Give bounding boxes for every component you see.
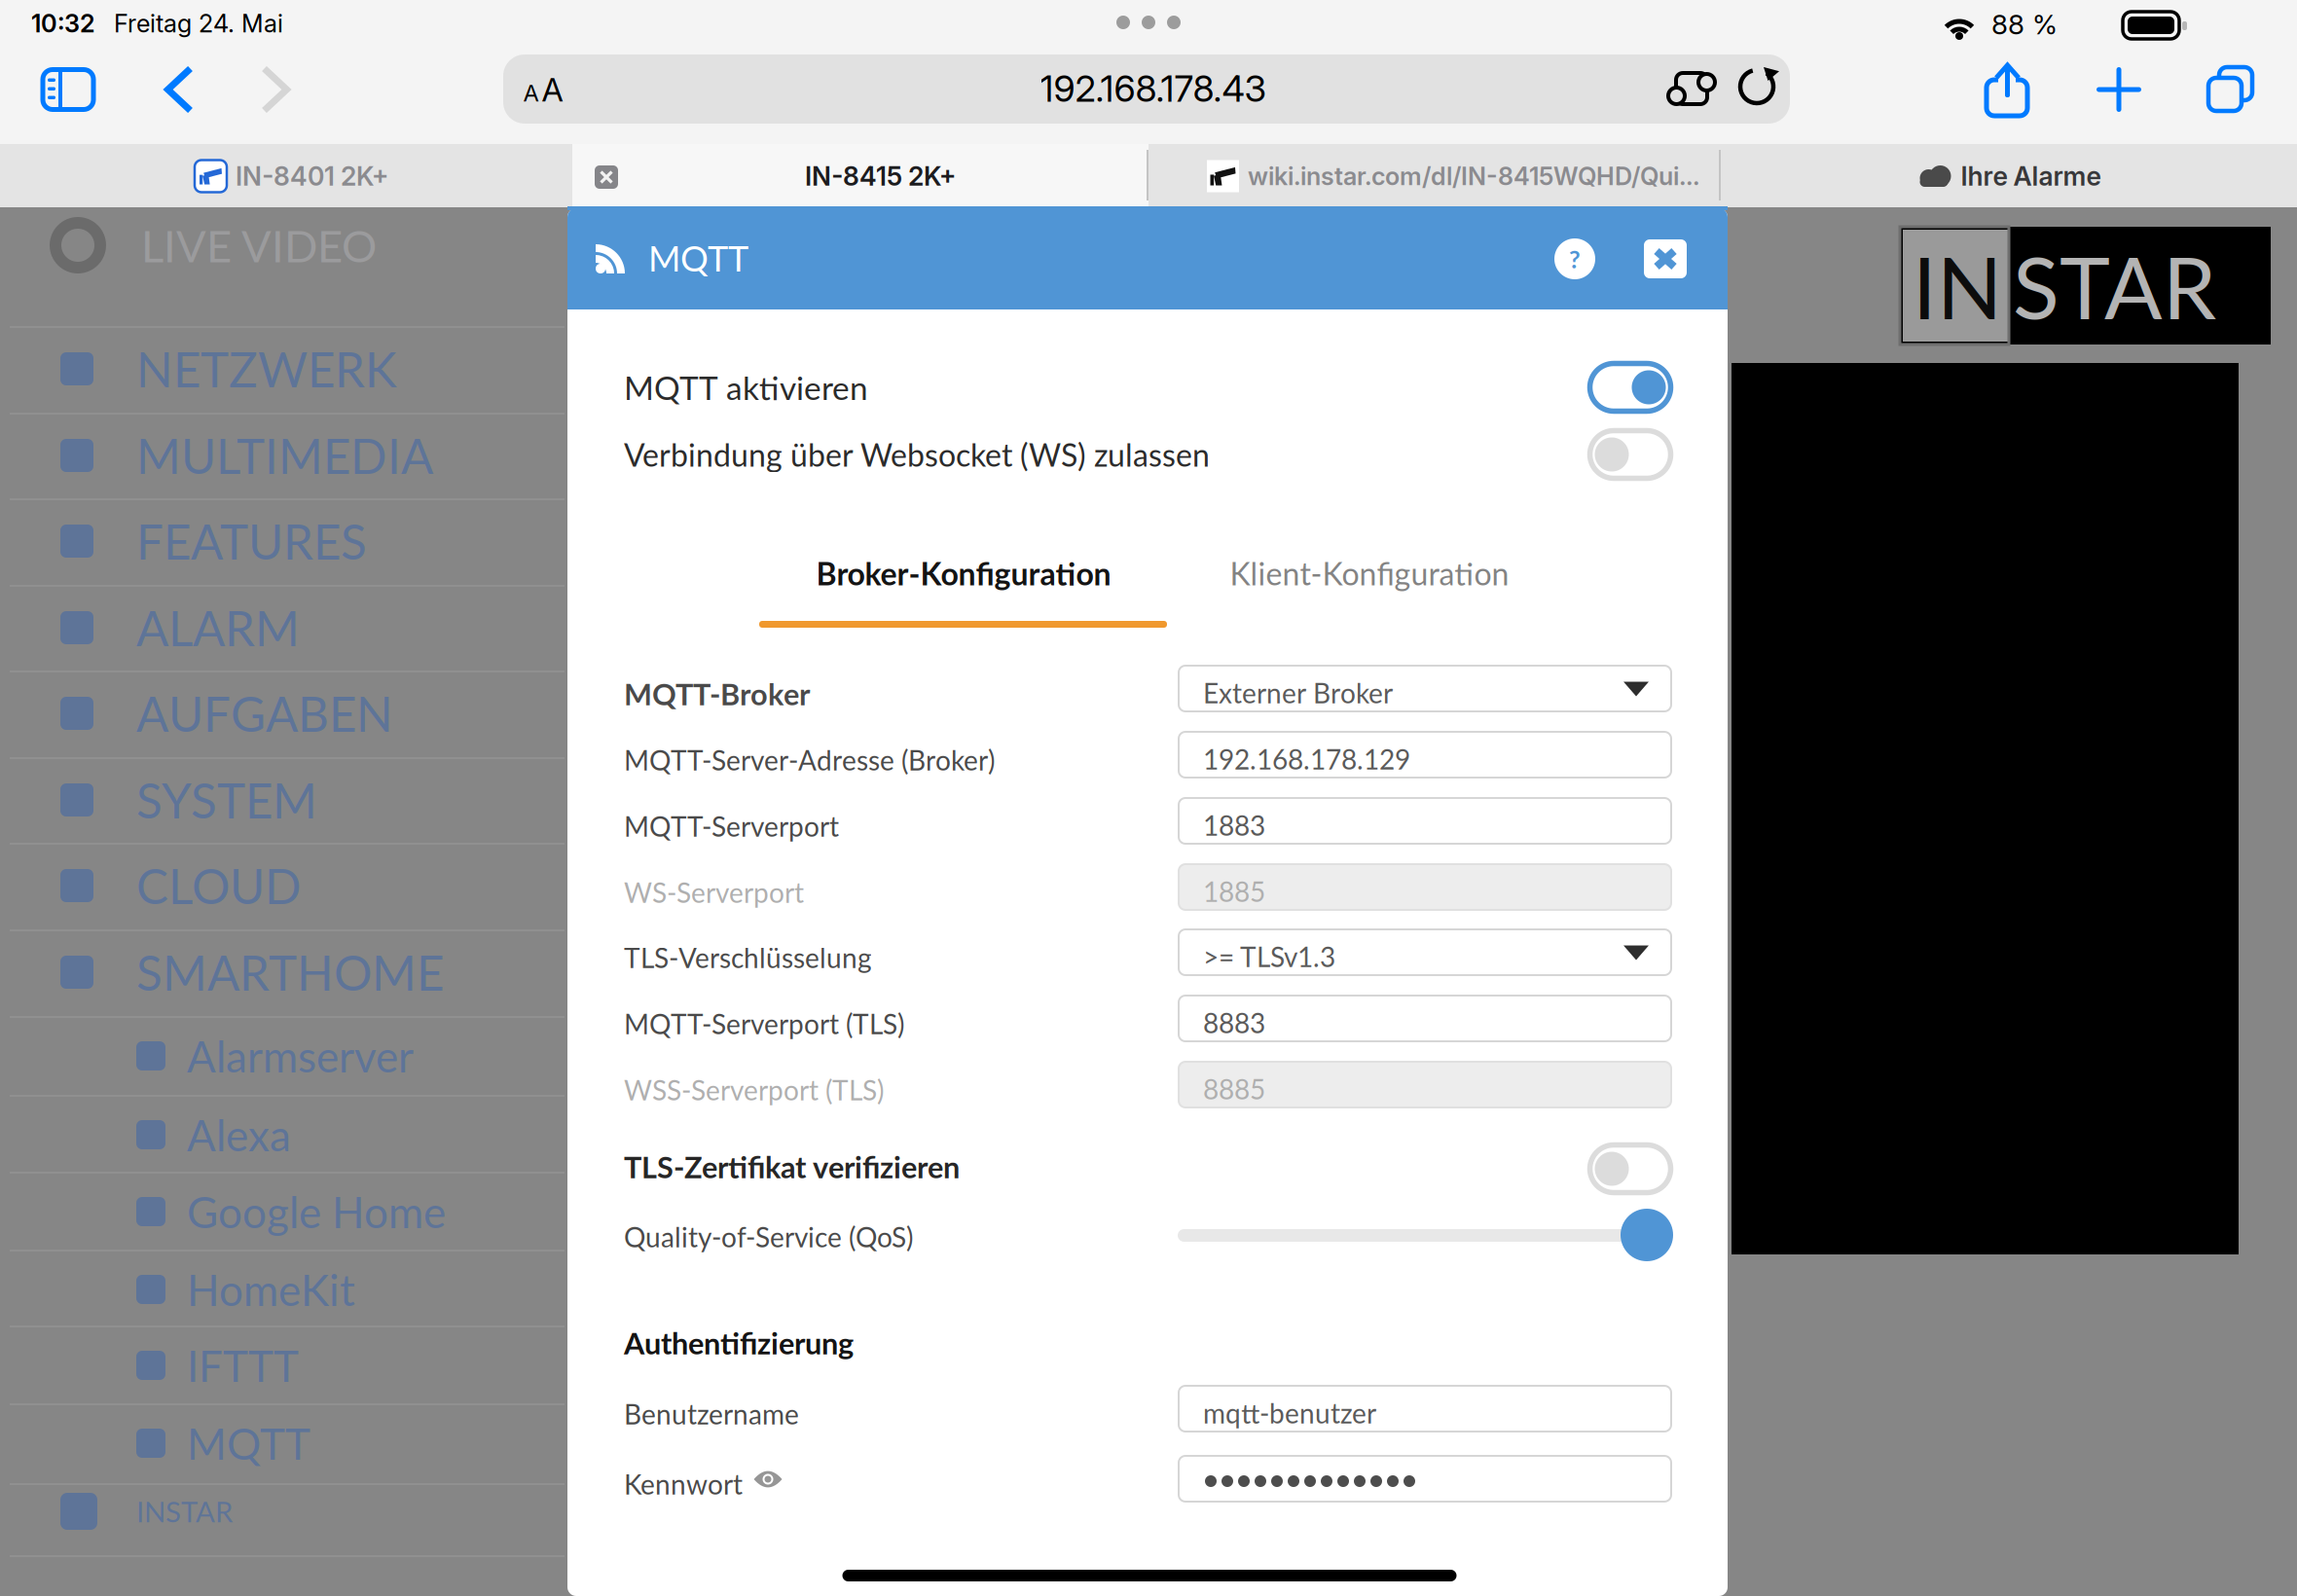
staticText: Kennwort	[624, 1468, 743, 1500]
staticText: NETZWERK	[136, 340, 397, 398]
staticText: A	[523, 79, 539, 107]
button[interactable]: Hilfe	[1543, 227, 1607, 291]
staticText: WS-Serverport	[624, 876, 804, 909]
button[interactable]: Broker-Konfiguration	[759, 526, 1168, 620]
staticText: Google Home	[187, 1186, 446, 1237]
staticText: >= TLSv1.3	[1203, 940, 1335, 973]
button[interactable]: Tabs anzeigen	[2194, 53, 2268, 127]
staticText: MQTT-Serverport	[624, 810, 839, 843]
button[interactable]: Neuer Tab	[2082, 53, 2156, 127]
staticText: HomeKit	[187, 1264, 355, 1315]
button[interactable]: Klient-Konfiguration	[1165, 526, 1574, 620]
staticText: SMARTHOME	[136, 943, 444, 1001]
staticText: IFTTT	[187, 1340, 299, 1391]
staticText: 8885	[1203, 1073, 1265, 1105]
staticText: MQTT-Serverport (TLS)	[624, 1007, 904, 1040]
staticText: Externer Broker	[1203, 677, 1393, 709]
staticText: ALARM	[136, 599, 300, 657]
staticText: A	[542, 70, 563, 109]
staticText: MQTT aktivieren	[624, 368, 868, 407]
staticText: Alexa	[187, 1109, 291, 1160]
staticText: STAR	[2013, 235, 2216, 337]
staticText: 10:32	[31, 8, 95, 38]
staticText: WSS-Serverport (TLS)	[624, 1074, 884, 1106]
staticText: Benutzername	[624, 1398, 799, 1430]
button[interactable]: Vorwärts	[237, 57, 314, 122]
staticText: FEATURES	[136, 512, 367, 570]
button[interactable]: wiki.instar.com/dl/IN-8415WQHD/Qui...	[1167, 145, 1739, 208]
staticText: 8883	[1203, 1006, 1265, 1039]
staticText: 1883	[1203, 809, 1265, 842]
staticText: 192.168.178.43	[1040, 67, 1267, 111]
staticText: wiki.instar.com/dl/IN-8415WQHD/Qui...	[1248, 161, 1699, 191]
staticText: 88 %	[1991, 8, 2058, 41]
button[interactable]: Tab schließen	[583, 154, 630, 200]
staticText: AUFGABEN	[136, 685, 393, 742]
staticText: Authentifizierung	[624, 1325, 854, 1361]
staticText: Broker-Konfiguration	[816, 555, 1111, 592]
button[interactable]: Neu laden	[1729, 58, 1791, 121]
staticText: Klient-Konfiguration	[1230, 555, 1509, 592]
staticText: TLS-Verschlüsselung	[624, 941, 872, 974]
staticText: SYSTEM	[136, 771, 317, 829]
button[interactable]: Schriftgröße	[499, 55, 587, 124]
button[interactable]: Ihre Alarme	[1722, 145, 2297, 208]
button[interactable]: TLS-Zertifikat verifizieren	[1572, 1133, 1689, 1205]
staticText: 1885	[1203, 875, 1265, 908]
staticText: ?	[1569, 244, 1581, 274]
staticText: TLS-Zertifikat verifizieren	[624, 1149, 960, 1185]
button[interactable]: Schließen	[1633, 227, 1697, 291]
staticText: MQTT	[648, 237, 748, 279]
button[interactable]: Seitenleiste	[29, 57, 107, 122]
staticText: IN-8415 2K+	[805, 160, 957, 192]
staticText: MQTT-Server-Adresse (Broker)	[624, 744, 995, 776]
staticText: MQTT	[187, 1418, 310, 1469]
button[interactable]: IN-8415 2K+	[593, 145, 1169, 208]
staticText: Verbindung über Websocket (WS) zulassen	[624, 436, 1210, 473]
button[interactable]: Erweiterungen	[1663, 58, 1726, 121]
staticText: 192.168.178.129	[1203, 743, 1410, 775]
staticText: IN-8401 2K+	[236, 160, 389, 192]
staticText: Alarmserver	[187, 1030, 414, 1082]
staticText: MQTT-Broker	[624, 676, 810, 712]
staticText: IN	[1913, 235, 2002, 337]
button[interactable]: Quality-of-Service (QoS)	[1608, 1196, 1686, 1274]
button[interactable]: MQTT aktivieren	[1572, 351, 1689, 423]
button[interactable]: Zurück	[140, 57, 218, 122]
button[interactable]: IN-8401 2K+	[6, 145, 578, 208]
staticText: Ihre Alarme	[1961, 160, 2101, 192]
button[interactable]: MQTT	[596, 219, 868, 297]
staticText: CLOUD	[136, 857, 302, 914]
staticText: mqtt-benutzer	[1203, 1397, 1376, 1429]
button[interactable]: Kennwort anzeigen	[746, 1460, 790, 1499]
staticText: Quality-of-Service (QoS)	[624, 1221, 913, 1253]
staticText: LIVE VIDEO	[141, 219, 377, 272]
button[interactable]: Verbindung über Websocket (WS) zulassen	[1572, 418, 1689, 490]
staticText: INSTAR	[136, 1494, 233, 1528]
staticText: Freitag 24. Mai	[114, 8, 283, 38]
button[interactable]: Teilen	[1970, 53, 2044, 127]
staticText: MULTIMEDIA	[136, 427, 433, 484]
